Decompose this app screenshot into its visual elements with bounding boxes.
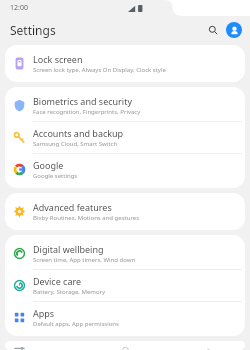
- button[interactable]: Accounts and backup: [5, 122, 245, 154]
- button[interactable]: Lock screen: [5, 48, 245, 79]
- button[interactable]: Device care: [5, 270, 245, 302]
- button[interactable]: Digital wellbeing: [5, 238, 245, 270]
- staticText: Lock screen: [33, 53, 83, 65]
- button[interactable]: Advanced features: [5, 196, 245, 227]
- button[interactable]: Google: [5, 154, 245, 185]
- staticText: Samsung Cloud, Smart Switch: [33, 140, 118, 148]
- staticText: Battery, Storage, Memory: [33, 288, 106, 296]
- staticText: Settings: [10, 22, 56, 38]
- staticText: Bixby Routines, Motions and gestures: [33, 214, 140, 222]
- staticText: Google settings: [33, 172, 78, 180]
- staticText: Google: [33, 159, 64, 171]
- staticText: Biometrics and security: [33, 95, 133, 107]
- button[interactable]: Search: [203, 20, 223, 40]
- staticText: Apps: [33, 307, 55, 319]
- button[interactable]: Account: [226, 22, 242, 38]
- staticText: Face recognition, Fingerprints, Privacy: [33, 108, 141, 116]
- staticText: 12:00: [10, 3, 28, 13]
- staticText: Accounts and backup: [33, 127, 124, 139]
- staticText: Screen time, App timers, Wind down: [33, 256, 136, 264]
- staticText: Device care: [33, 275, 82, 287]
- staticText: Advanced features: [33, 201, 112, 213]
- staticText: Screen lock type, Always On Display, Clo…: [33, 66, 166, 74]
- button[interactable]: Apps: [5, 302, 245, 333]
- button[interactable]: Biometrics and security: [5, 90, 245, 122]
- staticText: Digital wellbeing: [33, 243, 104, 255]
- staticText: Default apps, App permissions: [33, 320, 119, 328]
